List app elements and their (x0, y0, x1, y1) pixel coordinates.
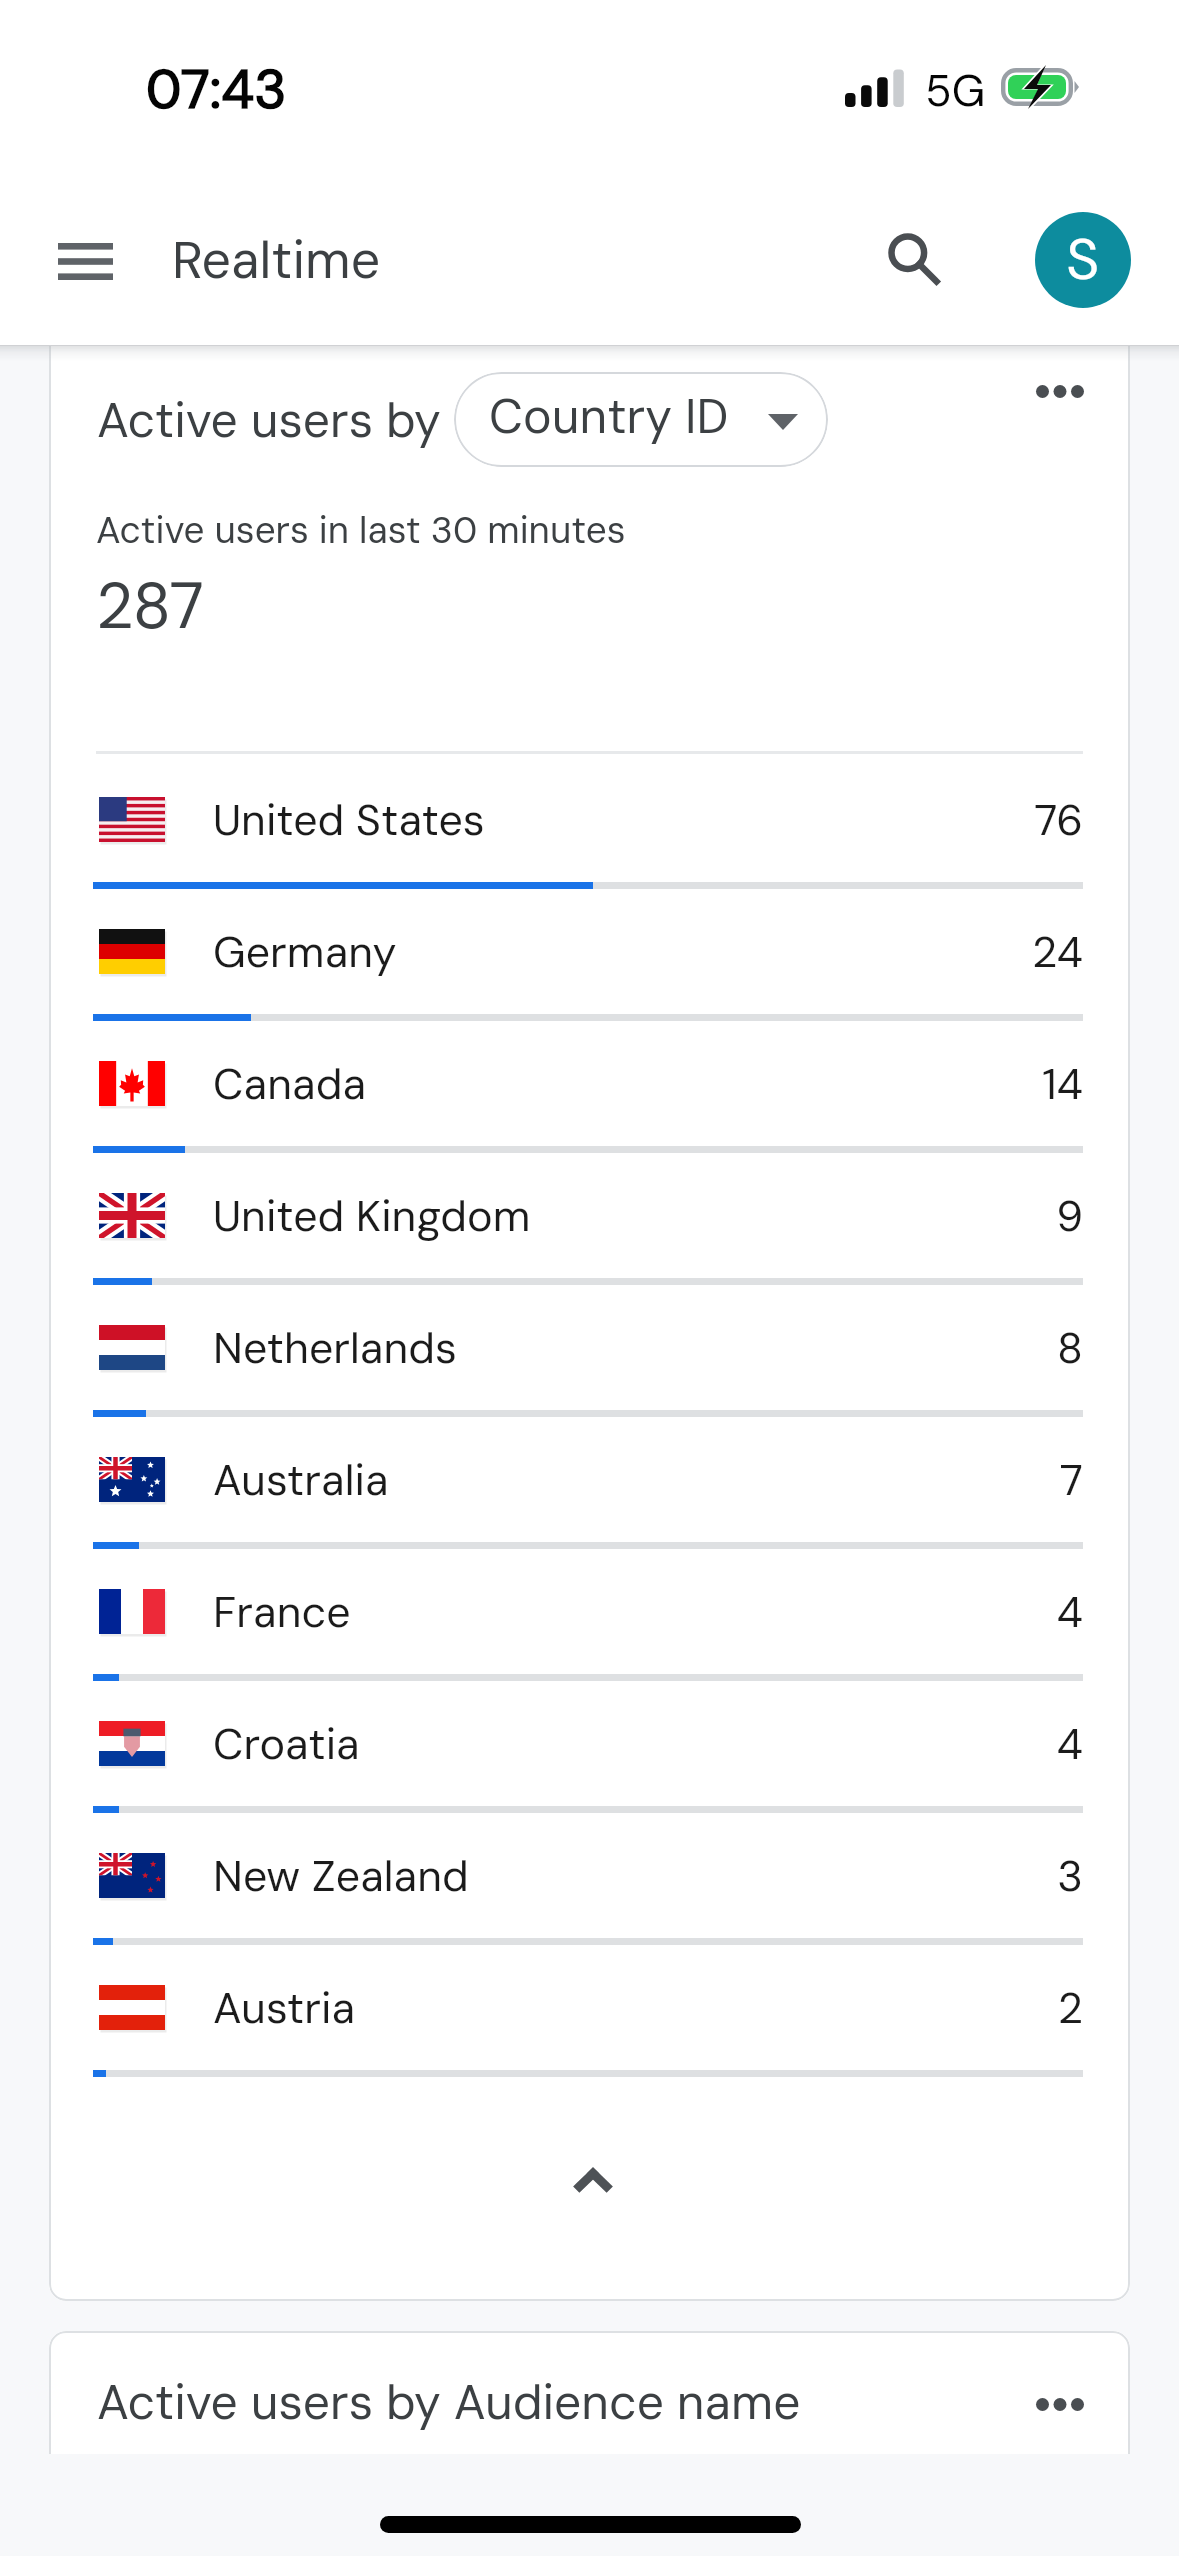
button[interactable]: New Zealand (49, 1808, 1130, 1940)
staticText: Active users by Audience name (97, 2371, 801, 2433)
staticText: New Zealand (213, 1848, 469, 1904)
staticText: 14 (749, 1056, 1083, 1112)
staticText: 7 (749, 1452, 1083, 1508)
staticText: Country ID (489, 385, 729, 447)
button[interactable]: Search (860, 205, 972, 317)
staticText: Croatia (213, 1716, 360, 1772)
staticText: 5G (925, 62, 986, 119)
button[interactable]: Collapse (513, 2115, 673, 2245)
button[interactable]: Active users by Audience name (49, 2331, 1130, 2454)
staticText: United States (213, 792, 485, 848)
staticText: 2 (749, 1980, 1083, 2036)
staticText: 287 (96, 565, 205, 648)
button[interactable]: Croatia (49, 1676, 1130, 1808)
staticText: 07:43 (146, 54, 287, 124)
staticText: Netherlands (213, 1320, 457, 1376)
staticText: France (213, 1584, 351, 1640)
staticText: Austria (213, 1980, 356, 2036)
button[interactable]: Australia (49, 1412, 1130, 1544)
staticText: Canada (213, 1056, 367, 1112)
button[interactable]: United Kingdom (49, 1148, 1130, 1280)
staticText: Germany (213, 924, 397, 980)
staticText: 9 (749, 1188, 1083, 1244)
staticText: 4 (749, 1716, 1083, 1772)
staticText: United Kingdom (213, 1188, 531, 1244)
staticText: 4 (749, 1584, 1083, 1640)
button[interactable]: Netherlands (49, 1280, 1130, 1412)
staticText: 3 (749, 1848, 1083, 1904)
button[interactable]: Account (1035, 212, 1131, 308)
button[interactable]: United States (49, 752, 1130, 884)
staticText: S (1066, 222, 1100, 296)
button[interactable]: More options (1027, 2371, 1093, 2437)
button[interactable]: Germany (49, 884, 1130, 1016)
button[interactable]: Canada (49, 1016, 1130, 1148)
staticText: Australia (213, 1452, 389, 1508)
button[interactable]: Navigation menu (29, 205, 141, 317)
button[interactable]: Austria (49, 1940, 1130, 2072)
button[interactable]: France (49, 1544, 1130, 1676)
button[interactable]: Country ID (454, 372, 828, 467)
staticText: Active users by (97, 389, 441, 451)
staticText: Realtime (172, 226, 381, 294)
staticText: 24 (749, 924, 1083, 980)
staticText: 8 (749, 1320, 1083, 1376)
staticText: 76 (749, 792, 1083, 848)
button[interactable]: More options (1027, 358, 1093, 424)
staticText: Active users in last 30 minutes (96, 506, 626, 554)
